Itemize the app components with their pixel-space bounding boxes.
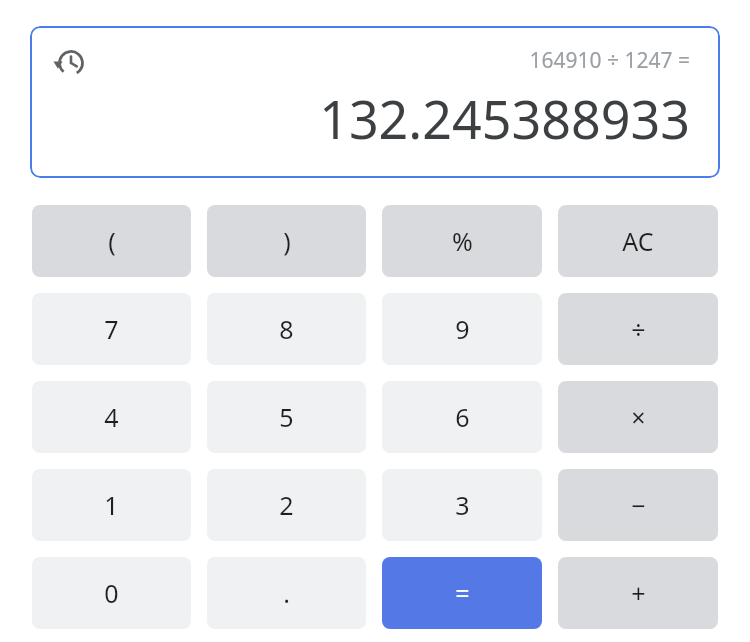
- button[interactable]: =: [382, 557, 542, 629]
- staticText: 9: [455, 312, 470, 346]
- staticText: 2: [279, 488, 294, 522]
- button[interactable]: 7: [32, 293, 191, 365]
- staticText: 3: [455, 488, 470, 522]
- staticText: ): [283, 224, 291, 258]
- button[interactable]: ): [207, 205, 366, 277]
- staticText: 5: [279, 400, 294, 434]
- staticText: 8: [279, 312, 294, 346]
- staticText: 164910 ÷ 1247 =: [529, 46, 690, 75]
- staticText: −: [631, 488, 646, 522]
- staticText: (: [108, 224, 116, 258]
- staticText: %: [452, 224, 473, 258]
- staticText: +: [631, 576, 646, 610]
- button[interactable]: %: [382, 205, 542, 277]
- button[interactable]: History: [54, 46, 88, 80]
- button[interactable]: 3: [382, 469, 542, 541]
- staticText: =: [455, 576, 470, 610]
- button[interactable]: +: [558, 557, 718, 629]
- button[interactable]: 9: [382, 293, 542, 365]
- button[interactable]: .: [207, 557, 366, 629]
- staticText: 0: [104, 576, 119, 610]
- button[interactable]: −: [558, 469, 718, 541]
- staticText: ÷: [631, 312, 646, 346]
- staticText: .: [283, 576, 290, 610]
- button[interactable]: 5: [207, 381, 366, 453]
- staticText: 6: [455, 400, 470, 434]
- button[interactable]: 6: [382, 381, 542, 453]
- staticText: ×: [631, 400, 646, 434]
- staticText: 4: [104, 400, 119, 434]
- staticText: 7: [104, 312, 119, 346]
- staticText: 132.245388933: [319, 83, 690, 154]
- button[interactable]: ÷: [558, 293, 718, 365]
- button[interactable]: 4: [32, 381, 191, 453]
- button[interactable]: ×: [558, 381, 718, 453]
- button[interactable]: History: [30, 26, 720, 178]
- staticText: 1: [104, 488, 119, 522]
- staticText: AC: [622, 224, 654, 258]
- button[interactable]: 8: [207, 293, 366, 365]
- button[interactable]: AC: [558, 205, 718, 277]
- button[interactable]: 2: [207, 469, 366, 541]
- button[interactable]: 1: [32, 469, 191, 541]
- button[interactable]: 0: [32, 557, 191, 629]
- button[interactable]: (: [32, 205, 191, 277]
